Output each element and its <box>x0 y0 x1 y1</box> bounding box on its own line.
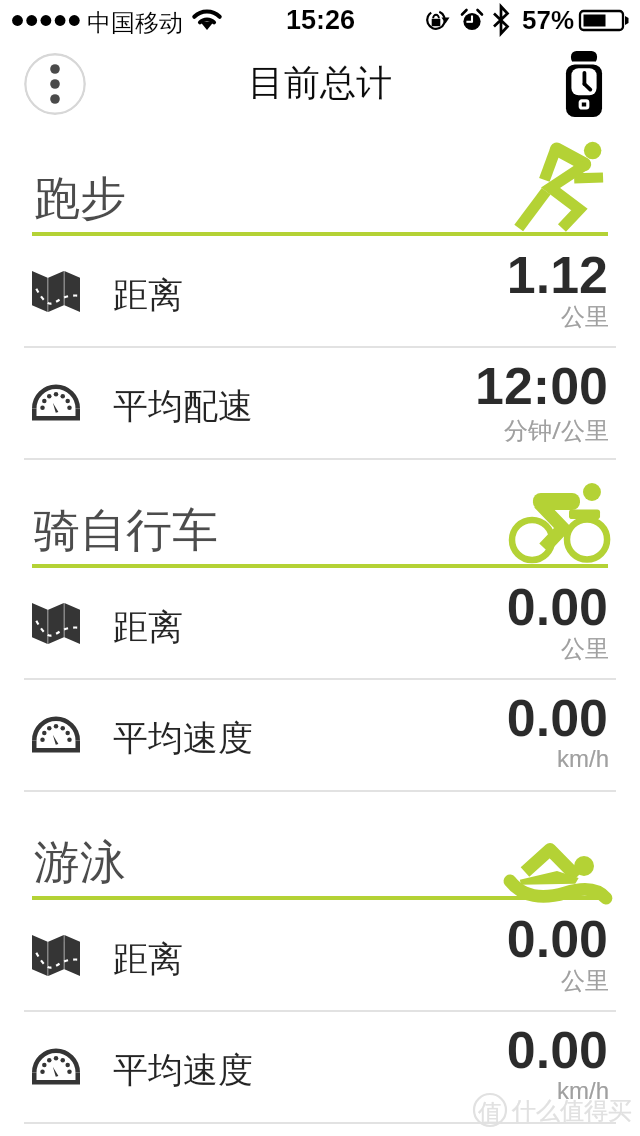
button[interactable]: 距离 <box>0 900 640 1011</box>
staticText: 0.00 <box>0 689 608 747</box>
staticText: 目前总计 <box>0 60 640 105</box>
staticText: 平均速度 <box>113 1048 253 1092</box>
button[interactable]: 距离 <box>0 568 640 679</box>
staticText: 公里 <box>0 966 609 996</box>
staticText: km/h <box>0 1077 609 1104</box>
button[interactable]: 平均速度 <box>0 679 640 791</box>
staticText: 跑步 <box>34 170 126 228</box>
staticText: 57% <box>522 5 575 34</box>
staticText: 什么值得买 <box>512 1096 632 1126</box>
staticText: 公里 <box>0 634 609 664</box>
staticText: 值 <box>478 1098 502 1128</box>
button[interactable]: 平均速度 <box>0 1011 640 1123</box>
staticText: 1.12 <box>0 246 608 304</box>
staticText: 距离 <box>113 273 183 317</box>
button[interactable]: More options <box>24 53 86 115</box>
staticText: 骑自行车 <box>34 502 218 560</box>
staticText: 0.00 <box>0 578 608 636</box>
staticText: 平均配速 <box>113 384 253 428</box>
staticText: 0.00 <box>0 1021 608 1079</box>
staticText: 距离 <box>113 605 183 649</box>
staticText: 中国移动 <box>87 8 183 38</box>
button[interactable]: 距离 <box>0 236 640 347</box>
staticText: 15:26 <box>286 5 356 35</box>
staticText: km/h <box>0 745 609 772</box>
staticText: 平均速度 <box>113 716 253 760</box>
staticText: 0.00 <box>0 910 608 968</box>
button[interactable]: Connected watch <box>563 51 605 117</box>
staticText: 距离 <box>113 937 183 981</box>
staticText: 12:00 <box>0 357 608 415</box>
button[interactable]: 平均配速 <box>0 347 640 459</box>
staticText: 游泳 <box>34 834 126 892</box>
staticText: 公里 <box>0 302 609 332</box>
staticText: 分钟/公里 <box>0 413 609 446</box>
